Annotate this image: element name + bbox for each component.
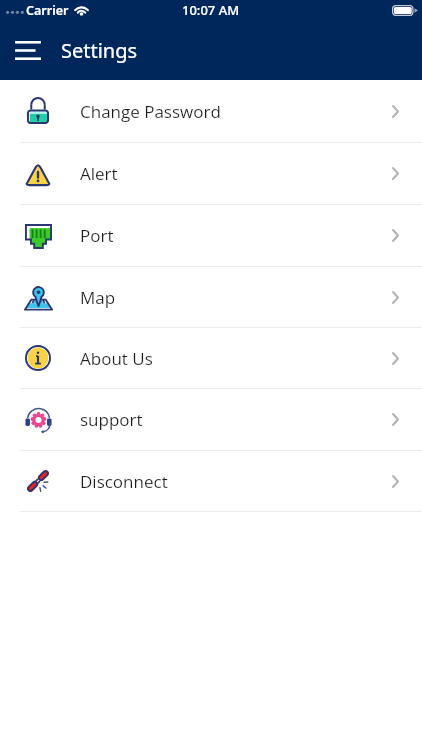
staticText: Map	[80, 286, 116, 309]
staticText: 10:07 AM	[182, 1, 240, 19]
staticText: Change Password	[80, 100, 221, 123]
button[interactable]: Port	[0, 205, 422, 266]
staticText: Port	[80, 224, 114, 247]
button[interactable]: Map	[0, 267, 422, 327]
staticText: About Us	[80, 347, 153, 370]
button[interactable]: About Us	[0, 328, 422, 388]
staticText: Settings	[61, 37, 138, 64]
button[interactable]: support	[0, 389, 422, 450]
staticText: Carrier	[26, 2, 69, 19]
button[interactable]: Alert	[0, 143, 422, 204]
button[interactable]: Change Password	[0, 80, 422, 142]
staticText: Disconnect	[80, 470, 168, 493]
button[interactable]: Menu	[9, 31, 47, 69]
staticText: Alert	[80, 162, 118, 185]
button[interactable]: Disconnect	[0, 451, 422, 511]
staticText: support	[80, 408, 143, 431]
